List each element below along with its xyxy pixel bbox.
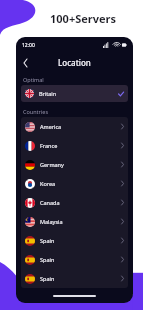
staticText: Germany <box>40 161 64 168</box>
button[interactable]: Korea <box>21 174 128 193</box>
staticText: Britain <box>39 90 57 97</box>
staticText: Korea <box>40 180 56 187</box>
button[interactable]: Spain <box>21 269 128 288</box>
button[interactable]: France <box>21 136 128 155</box>
staticText: Location <box>58 57 91 68</box>
staticText: France <box>40 142 58 149</box>
button[interactable]: Britain <box>21 85 128 102</box>
button[interactable]: Canada <box>21 193 128 212</box>
staticText: Spain <box>40 275 55 282</box>
staticText: Countries <box>23 108 49 115</box>
staticText: 12:00 <box>22 42 35 49</box>
staticText: Canada <box>40 199 60 206</box>
button[interactable]: Malaysia <box>21 212 128 231</box>
button[interactable]: Back <box>19 56 32 69</box>
staticText: Spain <box>40 237 55 244</box>
staticText: Optimal <box>23 76 44 83</box>
staticText: Spain <box>40 256 55 263</box>
staticText: America <box>40 123 62 130</box>
button[interactable]: America <box>21 117 128 136</box>
button[interactable]: Germany <box>21 155 128 174</box>
staticText: Malaysia <box>40 218 63 225</box>
button[interactable]: Spain <box>21 231 128 250</box>
button[interactable]: Spain <box>21 250 128 269</box>
staticText: 100+Servers <box>50 11 116 26</box>
